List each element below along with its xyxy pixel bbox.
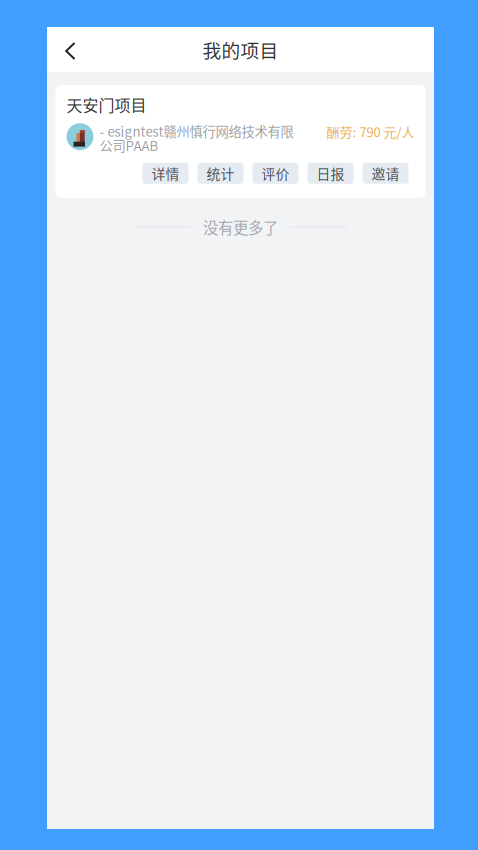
button[interactable]: 邀请 <box>362 163 408 184</box>
staticText: 统计 <box>206 163 234 183</box>
button[interactable]: 日报 <box>307 163 353 184</box>
button[interactable]: 详情 <box>142 163 188 184</box>
staticText: 邀请 <box>371 163 399 183</box>
staticText: 酬劳: 790 元/人 <box>326 122 414 141</box>
button[interactable]: 统计 <box>197 163 243 184</box>
staticText: 天安门项目 <box>66 93 146 116</box>
staticText: 没有更多了 <box>203 216 278 238</box>
staticText: 评价 <box>261 163 289 183</box>
button[interactable]: Back <box>47 25 94 73</box>
staticText: - esigntest赣州慎行网络技术有限公司PAAB <box>99 121 293 155</box>
staticText: 日报 <box>316 163 344 183</box>
button[interactable]: 评价 <box>252 163 298 184</box>
staticText: 我的项目 <box>202 36 278 63</box>
staticText: 详情 <box>151 163 179 183</box>
